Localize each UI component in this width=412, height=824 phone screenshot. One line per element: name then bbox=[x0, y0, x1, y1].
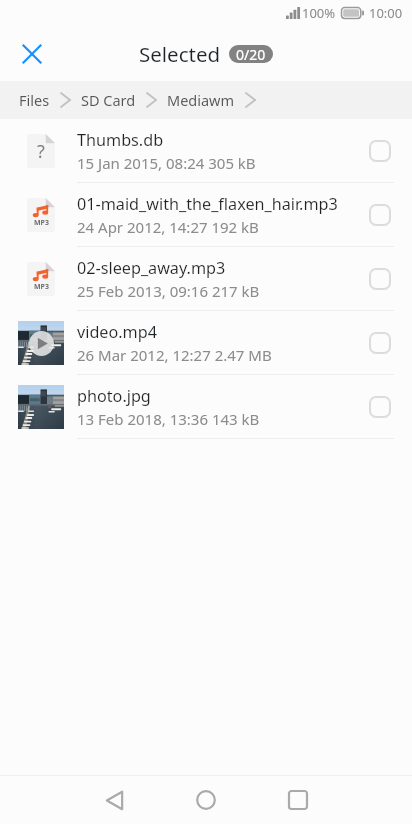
button[interactable]: video.mp4 bbox=[0, 311, 412, 375]
button[interactable]: Select video.mp4 bbox=[356, 319, 404, 367]
staticText: Mediawm bbox=[167, 90, 235, 110]
button[interactable]: MP3 bbox=[0, 247, 412, 311]
button[interactable]: Select 01-maid_with_the_flaxen_hair.mp3 bbox=[356, 191, 404, 239]
staticText: 13 Feb 2018, 13:36 143 kB bbox=[77, 409, 260, 429]
staticText: 01-maid_with_the_flaxen_hair.mp3 bbox=[77, 193, 338, 215]
button[interactable]: ? bbox=[0, 119, 412, 183]
button[interactable]: SD Card bbox=[81, 90, 136, 110]
button[interactable]: Back bbox=[68, 776, 160, 824]
staticText: 26 Mar 2012, 12:27 2.47 MB bbox=[77, 345, 272, 365]
button[interactable]: Select Thumbs.db bbox=[356, 127, 404, 175]
button[interactable]: photo.jpg bbox=[0, 375, 412, 439]
staticText: Files bbox=[19, 90, 50, 110]
staticText: ? bbox=[37, 139, 45, 164]
staticText: MP3 bbox=[34, 282, 49, 292]
staticText: 0/20 bbox=[236, 45, 266, 63]
button[interactable]: Select 02-sleep_away.mp3 bbox=[356, 255, 404, 303]
staticText: 02-sleep_away.mp3 bbox=[77, 257, 226, 279]
staticText: photo.jpg bbox=[77, 385, 151, 407]
button[interactable]: Recents bbox=[252, 776, 344, 824]
staticText: 15 Jan 2015, 08:24 305 kB bbox=[77, 153, 256, 173]
staticText: 10:00 bbox=[369, 4, 403, 22]
staticText: video.mp4 bbox=[77, 321, 157, 343]
button[interactable]: Mediawm bbox=[167, 90, 235, 110]
button[interactable]: MP3 bbox=[0, 183, 412, 247]
button[interactable]: Select photo.jpg bbox=[356, 383, 404, 431]
staticText: MP3 bbox=[34, 218, 49, 228]
staticText: SD Card bbox=[81, 90, 136, 110]
staticText: 100% bbox=[302, 4, 336, 22]
button[interactable]: Files bbox=[19, 90, 50, 110]
button[interactable]: Home bbox=[160, 776, 252, 824]
staticText: Selected bbox=[139, 40, 221, 68]
staticText: Thumbs.db bbox=[77, 129, 164, 151]
staticText: 24 Apr 2012, 14:27 192 kB bbox=[77, 217, 259, 237]
button[interactable]: Close bbox=[10, 32, 54, 76]
staticText: 25 Feb 2013, 09:16 217 kB bbox=[77, 281, 260, 301]
